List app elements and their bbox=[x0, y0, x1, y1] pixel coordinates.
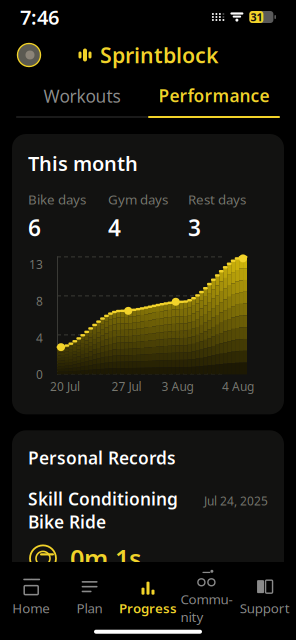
button[interactable]: Progress bbox=[119, 570, 177, 621]
staticText: Plan bbox=[77, 599, 103, 617]
staticText: Road bbox=[70, 577, 105, 596]
button[interactable]: Home bbox=[2, 570, 60, 621]
staticText: Sprintblock bbox=[100, 41, 219, 69]
staticText: 31 bbox=[250, 10, 262, 24]
staticText: Progress bbox=[119, 599, 177, 617]
staticText: Personal Records bbox=[28, 446, 176, 469]
staticText: 13 bbox=[29, 256, 43, 272]
staticText: Rest days bbox=[188, 191, 246, 208]
staticText: This month bbox=[28, 150, 138, 177]
button[interactable]: Workouts bbox=[16, 84, 148, 118]
staticText: 4 Aug bbox=[222, 378, 254, 394]
staticText: Home bbox=[12, 599, 50, 617]
button[interactable]: Performance bbox=[148, 84, 280, 118]
staticText: 3 Aug bbox=[161, 378, 193, 394]
staticText: Jul 24, 2025 bbox=[204, 493, 268, 509]
staticText: Community bbox=[180, 590, 232, 626]
staticText: Gym days bbox=[108, 191, 168, 208]
staticText: 4 bbox=[108, 212, 121, 242]
staticText: Performance bbox=[158, 84, 269, 107]
button[interactable]: Plan bbox=[60, 570, 119, 621]
button[interactable]: Community bbox=[177, 561, 236, 630]
staticText: 0 bbox=[36, 366, 43, 382]
button[interactable]: Support bbox=[236, 570, 294, 621]
staticText: Bike days bbox=[28, 191, 86, 208]
staticText: Support bbox=[240, 599, 290, 617]
button[interactable]: Profile bbox=[16, 42, 42, 68]
staticText: Skill Conditioning Bike Ride bbox=[28, 487, 178, 533]
staticText: 4 bbox=[36, 330, 43, 346]
staticText: 3 bbox=[188, 212, 201, 242]
staticText: 27 Jul bbox=[111, 378, 141, 394]
staticText: Workouts bbox=[43, 84, 120, 107]
staticText: 6 bbox=[28, 212, 41, 242]
staticText: 20 Jul bbox=[50, 378, 80, 394]
staticText: 0m 1s bbox=[70, 541, 141, 575]
staticText: 7:46 bbox=[20, 4, 59, 30]
staticText: 8 bbox=[36, 293, 43, 309]
